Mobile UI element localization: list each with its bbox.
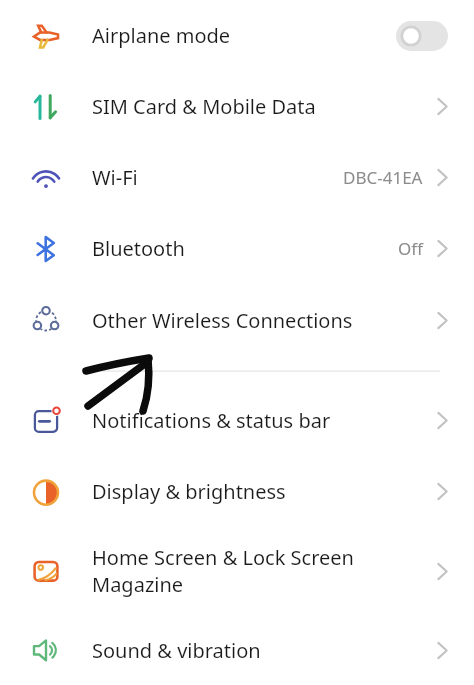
button[interactable]: Bluetooth [0, 213, 474, 284]
staticText: Off [398, 237, 423, 260]
staticText: SIM Card & Mobile Data [92, 93, 429, 120]
button[interactable]: Home Screen & Lock Screen Magazine [0, 527, 474, 615]
staticText: Wi-Fi [92, 164, 335, 191]
staticText: DBC-41EA [343, 166, 423, 189]
button[interactable]: Airplane mode [0, 0, 474, 71]
button[interactable]: Other Wireless Connections [0, 284, 474, 356]
staticText: Airplane mode [92, 22, 388, 49]
button[interactable]: SIM Card & Mobile Data [0, 71, 474, 142]
button[interactable]: Display & brightness [0, 456, 474, 527]
button[interactable]: Airplane mode toggle, off [396, 21, 448, 51]
staticText: Other Wireless Connections [92, 307, 429, 334]
button[interactable]: Notifications & status bar [0, 385, 474, 456]
button[interactable]: Sound & vibration [0, 615, 474, 685]
button[interactable]: Wi-Fi [0, 142, 474, 213]
staticText: Display & brightness [92, 478, 429, 505]
staticText: Notifications & status bar [92, 407, 429, 434]
staticText: Bluetooth [92, 235, 390, 262]
staticText: Sound & vibration [92, 637, 429, 664]
staticText: Home Screen & Lock Screen Magazine [92, 544, 429, 598]
